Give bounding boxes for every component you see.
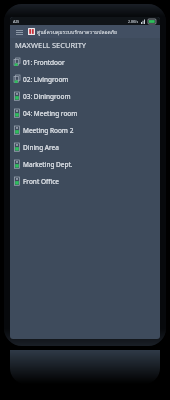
button[interactable]: Dining Area	[10, 139, 160, 156]
staticText: 2.8K/s	[128, 19, 139, 24]
button[interactable]: Marketing Dept.	[10, 156, 160, 173]
staticText: Marketing Dept.	[23, 160, 73, 169]
button[interactable]: Front Office	[10, 173, 160, 190]
staticText: MAXWELL SECURITY	[15, 40, 87, 50]
staticText: Dining Area	[23, 143, 59, 152]
staticText: ศูนย์ควบคุมระบบรักษาความปลอดภัย	[37, 28, 117, 36]
button[interactable]: 01: Frontdoor	[10, 54, 160, 71]
button[interactable]: 03: Diningroom	[10, 88, 160, 105]
button[interactable]: 02: Livingroom	[10, 71, 160, 88]
staticText: 01: Frontdoor	[23, 58, 65, 67]
staticText: Front Office	[23, 177, 59, 186]
staticText: 04: Meeting room	[23, 109, 78, 118]
staticText: 02: Livingroom	[23, 75, 69, 84]
button[interactable]: Meeting Room 2	[10, 122, 160, 139]
staticText: 03: Diningroom	[23, 92, 71, 101]
staticText: Meeting Room 2	[23, 126, 74, 135]
staticText: AIS	[13, 19, 20, 24]
button[interactable]: Open navigation menu	[14, 27, 24, 37]
button[interactable]: 04: Meeting room	[10, 105, 160, 122]
